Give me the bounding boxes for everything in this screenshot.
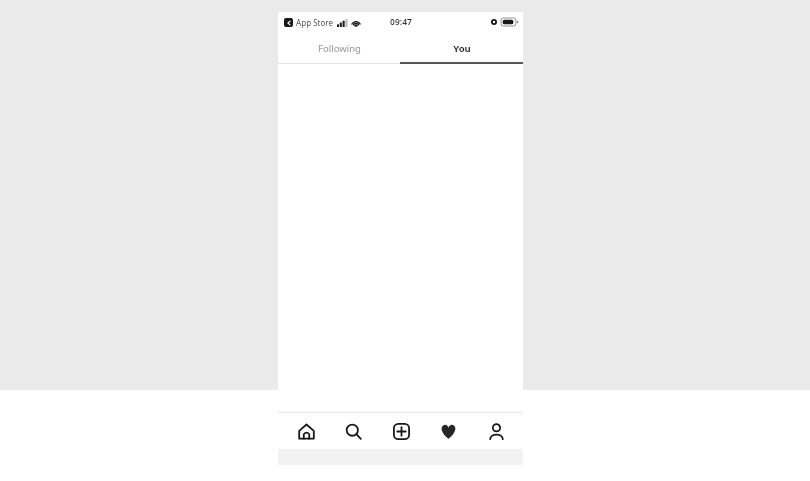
staticText: You xyxy=(453,42,471,55)
button[interactable]: Following xyxy=(278,32,400,64)
button[interactable]: Profile xyxy=(476,413,516,449)
staticText: Following xyxy=(318,42,361,55)
button[interactable]: Create xyxy=(381,413,421,449)
staticText: 09:47 xyxy=(390,16,412,28)
button[interactable]: Activity xyxy=(428,413,468,449)
button[interactable]: Home xyxy=(286,413,326,449)
button[interactable]: Search xyxy=(333,413,373,449)
staticText: App Store xyxy=(296,17,333,28)
button[interactable]: You xyxy=(400,32,523,64)
